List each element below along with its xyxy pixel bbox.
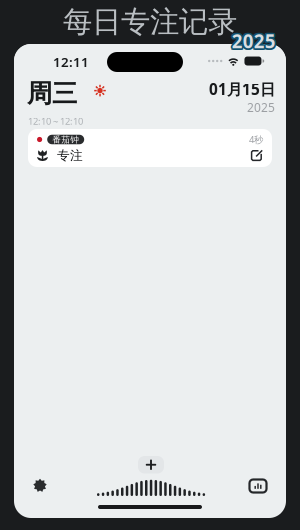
staticText: 周三 xyxy=(27,78,77,109)
staticText: 2025 xyxy=(230,27,274,52)
staticText: 01月15日 xyxy=(209,79,275,99)
staticText: 每日专注记录 xyxy=(63,3,237,40)
staticText: 2025 xyxy=(233,27,277,52)
staticText: 2025 xyxy=(232,29,276,53)
staticText: 番茄钟 xyxy=(52,134,79,145)
staticText: 2025 xyxy=(233,30,277,55)
staticText: 2025 xyxy=(233,29,277,53)
staticText: 专注 xyxy=(57,147,83,163)
button[interactable]: Settings xyxy=(25,473,55,499)
button[interactable]: Statistics xyxy=(243,473,273,499)
button[interactable]: 番茄钟 xyxy=(28,129,272,167)
staticText: 4秒 xyxy=(249,133,263,146)
staticText: 2025 xyxy=(247,99,275,115)
staticText: 2025 xyxy=(232,30,276,55)
staticText: 2025 xyxy=(230,30,274,55)
staticText: 12:11 xyxy=(53,53,89,71)
staticText: 2025 xyxy=(230,29,274,53)
staticText: 2025 xyxy=(232,27,276,52)
staticText: 12:10 ~ 12:10 xyxy=(28,115,83,127)
button[interactable]: Add entry xyxy=(138,456,164,473)
